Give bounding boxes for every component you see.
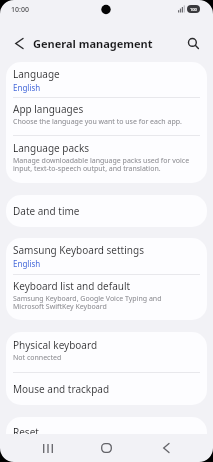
button[interactable]: Mouse and trackpad <box>6 373 207 405</box>
staticText: Keyboard list and default <box>13 279 131 293</box>
button[interactable]: Samsung Keyboard settings <box>6 238 207 274</box>
button[interactable]: Reset <box>6 417 207 457</box>
button[interactable]: Physical keyboard <box>6 332 207 372</box>
button[interactable]: Date and time <box>6 195 207 227</box>
staticText: Language <box>13 67 60 81</box>
button[interactable] <box>0 434 71 462</box>
staticText: Choose the language you want to use for … <box>13 117 182 127</box>
staticText: General management <box>33 36 153 51</box>
button[interactable] <box>142 434 213 462</box>
staticText: 100 <box>190 7 197 12</box>
staticText: App languages <box>13 102 84 116</box>
staticText: English <box>13 258 41 269</box>
button[interactable]: App languages <box>6 98 207 135</box>
staticText: Samsung Keyboard, Google Voice Typing an… <box>13 294 162 311</box>
staticText: Mouse and trackpad <box>13 382 110 396</box>
staticText: Date and time <box>13 204 80 218</box>
button[interactable] <box>180 30 206 56</box>
staticText: 10:00 <box>11 5 29 15</box>
staticText: Language packs <box>13 141 90 155</box>
button[interactable]: Language <box>6 62 207 97</box>
staticText: Physical keyboard <box>13 338 98 352</box>
staticText: English <box>13 82 41 93</box>
button[interactable] <box>5 29 33 57</box>
button[interactable]: Keyboard list and default <box>6 275 207 320</box>
staticText: Reset <box>13 425 39 439</box>
staticText: Samsung Keyboard settings <box>13 243 144 257</box>
button[interactable]: Language packs <box>6 136 207 183</box>
staticText: Manage downloadable language packs used … <box>13 156 190 173</box>
staticText: Not connected <box>13 353 62 363</box>
button[interactable] <box>71 434 142 462</box>
